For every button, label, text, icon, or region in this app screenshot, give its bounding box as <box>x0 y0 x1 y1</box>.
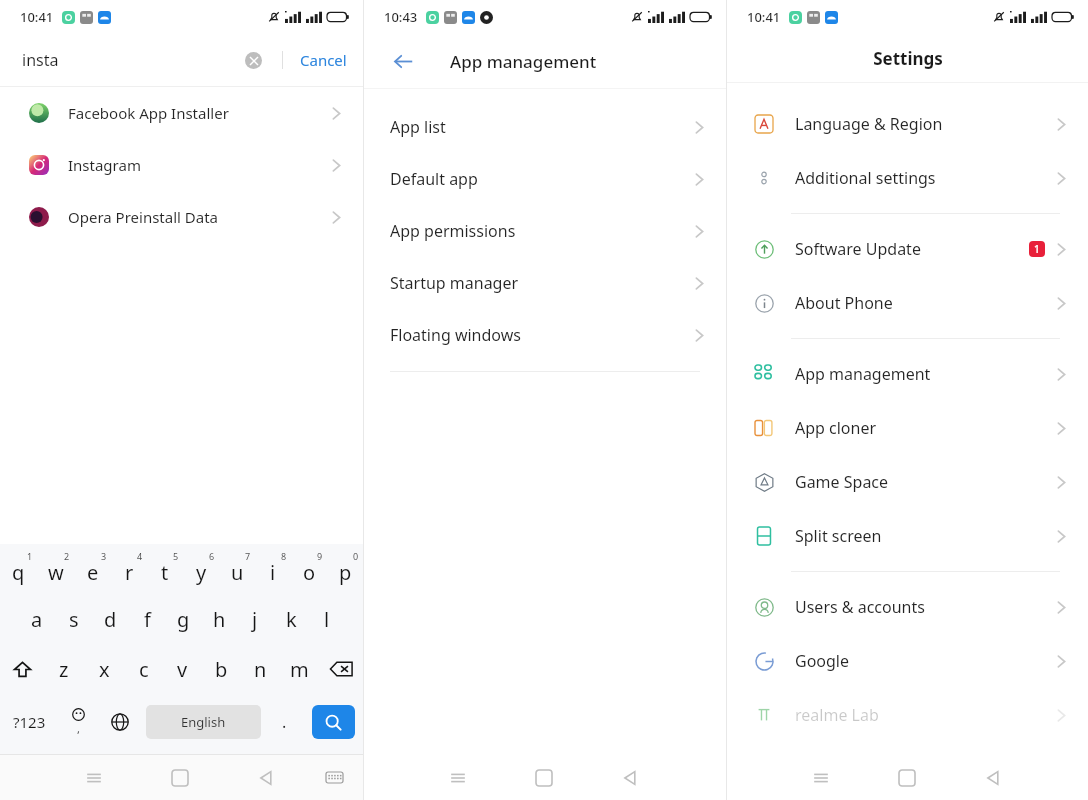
button[interactable]: a <box>18 594 55 644</box>
button[interactable]: Shift <box>0 644 44 694</box>
button[interactable]: j <box>237 594 273 644</box>
button[interactable]: b <box>202 644 241 694</box>
button[interactable]: Recents <box>54 755 134 800</box>
button[interactable]: Language & Region <box>727 97 1088 151</box>
button[interactable]: . <box>265 694 303 750</box>
button[interactable]: w <box>37 544 74 594</box>
staticText: 6 <box>209 550 215 562</box>
button[interactable]: z <box>44 644 84 694</box>
staticText: u <box>231 559 244 586</box>
staticText: Game Space <box>795 471 889 493</box>
button[interactable]: Clear <box>239 46 267 74</box>
button[interactable]: r <box>111 544 147 594</box>
staticText: English <box>181 713 226 731</box>
button[interactable]: g <box>165 594 201 644</box>
button[interactable]: h <box>201 594 237 644</box>
button[interactable]: y <box>183 544 219 594</box>
button[interactable]: ?123 <box>0 694 58 750</box>
button[interactable]: c <box>124 644 163 694</box>
staticText: i <box>270 559 276 586</box>
button[interactable]: u <box>219 544 255 594</box>
staticText: Floating windows <box>390 324 521 346</box>
button[interactable]: d <box>92 594 129 644</box>
button[interactable]: realme Lab <box>727 688 1088 742</box>
button[interactable]: Home <box>140 755 220 800</box>
staticText: 5 <box>173 550 179 562</box>
button[interactable]: e <box>74 544 111 594</box>
staticText: 1 <box>1034 242 1040 256</box>
staticText: k <box>286 606 297 633</box>
staticText: f <box>144 606 151 633</box>
staticText: Split screen <box>795 525 882 547</box>
staticText: , <box>77 721 80 736</box>
button[interactable]: Home <box>504 755 584 800</box>
staticText: h <box>213 606 226 633</box>
button[interactable]: Instagram <box>0 139 363 191</box>
button[interactable]: v <box>163 644 202 694</box>
button[interactable]: Back <box>590 755 670 800</box>
button[interactable]: Opera Preinstall Data <box>0 191 363 243</box>
button[interactable]: App cloner <box>727 401 1088 455</box>
staticText: realme Lab <box>795 704 879 726</box>
button[interactable]: x <box>84 644 124 694</box>
button[interactable]: i <box>255 544 291 594</box>
button[interactable]: o <box>291 544 327 594</box>
button[interactable]: n <box>241 644 280 694</box>
button[interactable]: q <box>0 544 37 594</box>
button[interactable]: App management <box>727 347 1088 401</box>
staticText: . <box>282 711 287 733</box>
button[interactable]: Cancel <box>300 40 347 80</box>
staticText: j <box>252 606 258 633</box>
button[interactable]: t <box>147 544 183 594</box>
button[interactable]: k <box>273 594 309 644</box>
staticText: Users & accounts <box>795 596 925 618</box>
button[interactable]: Floating windows <box>364 309 726 361</box>
button[interactable]: p <box>327 544 363 594</box>
button[interactable]: Users & accounts <box>727 580 1088 634</box>
button[interactable]: Back <box>226 755 306 800</box>
staticText: 3 <box>101 550 107 562</box>
staticText: Default app <box>390 168 478 190</box>
button[interactable]: m <box>280 644 319 694</box>
button[interactable]: App list <box>364 101 726 153</box>
button[interactable]: Home <box>867 755 947 800</box>
staticText: App permissions <box>390 220 516 242</box>
button[interactable]: Back <box>388 46 418 76</box>
staticText: c <box>139 656 149 683</box>
button[interactable]: English <box>146 705 261 739</box>
button[interactable]: Game Space <box>727 455 1088 509</box>
button[interactable]: Recents <box>418 755 498 800</box>
staticText: Opera Preinstall Data <box>68 207 219 227</box>
staticText: App list <box>390 116 446 138</box>
button[interactable]: Emoji <box>58 694 98 750</box>
button[interactable]: l <box>309 594 345 644</box>
button[interactable]: Facebook App Installer <box>0 87 363 139</box>
staticText: 4 <box>137 550 143 562</box>
button[interactable]: App permissions <box>364 205 726 257</box>
button[interactable]: f <box>129 594 165 644</box>
staticText: v <box>177 656 188 683</box>
staticText: Additional settings <box>795 167 936 189</box>
button[interactable]: Startup manager <box>364 257 726 309</box>
button[interactable]: Recents <box>781 755 861 800</box>
button[interactable]: Change language <box>98 694 142 750</box>
button[interactable]: Back <box>953 755 1033 800</box>
staticText: 10:41 <box>747 8 781 26</box>
button[interactable]: Default app <box>364 153 726 205</box>
button[interactable]: Hide keyboard <box>304 755 364 800</box>
button[interactable]: About Phone <box>727 276 1088 330</box>
staticText: y <box>196 559 207 586</box>
staticText: Software Update <box>795 238 921 260</box>
button[interactable]: Split screen <box>727 509 1088 563</box>
button[interactable]: Backspace <box>319 644 363 694</box>
button[interactable]: Additional settings <box>727 151 1088 205</box>
button[interactable]: Search <box>312 705 355 739</box>
staticText: Cancel <box>300 50 347 70</box>
button[interactable]: Google <box>727 634 1088 688</box>
staticText: 9 <box>317 550 323 562</box>
staticText: x <box>99 656 110 683</box>
button[interactable]: Software Update <box>727 222 1088 276</box>
staticText: q <box>12 559 25 586</box>
staticText: a <box>31 606 43 633</box>
button[interactable]: s <box>55 594 92 644</box>
